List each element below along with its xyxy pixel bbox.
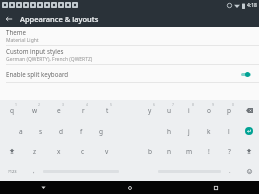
- staticText: !: [208, 147, 210, 156]
- button[interactable]: g: [91, 121, 111, 141]
- staticText: ?: [228, 147, 231, 156]
- staticText: a: [19, 127, 23, 136]
- staticText: 4:18: [247, 2, 257, 9]
- staticText: 6: [153, 102, 155, 107]
- staticText: c: [81, 147, 85, 156]
- button[interactable]: d: [51, 121, 71, 141]
- staticText: t: [106, 106, 109, 115]
- button[interactable]: a: [11, 121, 31, 141]
- staticText: b: [148, 147, 152, 156]
- staticText: l: [228, 127, 230, 136]
- staticText: 8: [192, 102, 194, 107]
- staticText: 1: [15, 102, 17, 107]
- button[interactable]: Enter: [239, 121, 259, 141]
- button[interactable]: v: [95, 141, 119, 161]
- button[interactable]: j: [179, 121, 199, 141]
- button[interactable]: q: [0, 100, 23, 121]
- staticText: o: [207, 106, 211, 115]
- staticText: Theme: [6, 28, 27, 36]
- staticText: Appearance & layouts: [20, 14, 99, 24]
- staticText: 2: [38, 102, 40, 107]
- button[interactable]: e: [47, 100, 71, 121]
- button[interactable]: m: [179, 141, 199, 161]
- staticText: m: [186, 147, 193, 156]
- button[interactable]: Shift: [0, 141, 23, 161]
- staticText: German (QWERTY), French (QWERTZ): [6, 56, 93, 63]
- staticText: u: [167, 106, 172, 115]
- staticText: s: [39, 127, 43, 136]
- button[interactable]: Theme: [0, 27, 259, 45]
- staticText: Enable split keyboard: [6, 70, 239, 78]
- staticText: Custom input styles: [6, 47, 64, 55]
- button[interactable]: Space: [43, 161, 119, 181]
- button[interactable]: !: [199, 141, 219, 161]
- button[interactable]: Recent apps: [173, 181, 259, 194]
- button[interactable]: y: [140, 100, 159, 121]
- button[interactable]: ?: [219, 141, 239, 161]
- staticText: n: [167, 147, 172, 156]
- staticText: q: [10, 106, 14, 115]
- staticText: ?123: [8, 169, 17, 174]
- staticText: r: [82, 106, 85, 115]
- staticText: ,: [33, 167, 35, 175]
- staticText: 7: [172, 102, 174, 107]
- button[interactable]: w: [23, 100, 47, 121]
- staticText: y: [148, 106, 152, 115]
- staticText: Material Light: [6, 37, 39, 44]
- button[interactable]: i: [179, 100, 199, 121]
- staticText: g: [99, 127, 103, 136]
- button[interactable]: n: [159, 141, 179, 161]
- staticText: e: [57, 106, 61, 115]
- staticText: 3: [62, 102, 64, 107]
- staticText: w: [32, 106, 38, 115]
- button[interactable]: h: [159, 121, 179, 141]
- staticText: i: [188, 106, 190, 115]
- button[interactable]: Custom input styles: [0, 46, 259, 64]
- button[interactable]: k: [199, 121, 219, 141]
- staticText: x: [57, 147, 61, 156]
- staticText: z: [33, 147, 37, 156]
- button[interactable]: z: [23, 141, 47, 161]
- button[interactable]: b: [140, 141, 159, 161]
- staticText: h: [167, 127, 172, 136]
- button[interactable]: s: [31, 121, 51, 141]
- button[interactable]: l: [219, 121, 239, 141]
- button[interactable]: Enable split keyboard: [0, 65, 259, 82]
- button[interactable]: Shift: [239, 141, 259, 161]
- button[interactable]: x: [47, 141, 71, 161]
- button[interactable]: ?123: [0, 161, 24, 181]
- button[interactable]: r: [71, 100, 95, 121]
- button[interactable]: u: [159, 100, 179, 121]
- staticText: v: [105, 147, 109, 156]
- staticText: f: [80, 127, 83, 136]
- staticText: 5: [110, 102, 112, 107]
- button[interactable]: ,: [24, 161, 43, 181]
- staticText: j: [188, 127, 190, 136]
- button[interactable]: f: [71, 121, 91, 141]
- button[interactable]: Back: [0, 181, 87, 194]
- staticText: p: [227, 106, 231, 115]
- button[interactable]: p: [219, 100, 239, 121]
- staticText: d: [59, 127, 63, 136]
- staticText: k: [207, 127, 211, 136]
- button[interactable]: Backspace: [239, 100, 259, 121]
- staticText: 0: [232, 102, 234, 107]
- staticText: 4: [86, 102, 88, 107]
- button[interactable]: c: [71, 141, 95, 161]
- staticText: .: [229, 167, 231, 175]
- button[interactable]: Emoji: [239, 161, 259, 181]
- button[interactable]: Navigate up: [0, 10, 17, 27]
- button[interactable]: Space: [158, 161, 221, 181]
- button[interactable]: o: [199, 100, 219, 121]
- staticText: 9: [212, 102, 214, 107]
- button[interactable]: t: [95, 100, 119, 121]
- button[interactable]: Home: [87, 181, 173, 194]
